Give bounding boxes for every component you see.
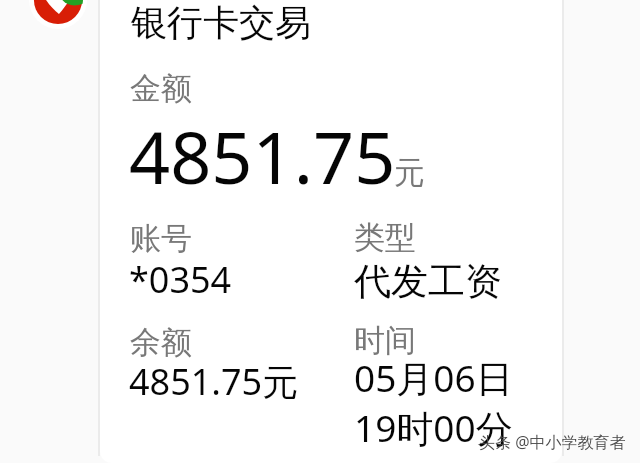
button[interactable]: App icon	[29, 0, 87, 30]
staticText: 余额	[130, 323, 192, 362]
staticText: 05月06日	[354, 352, 513, 403]
staticText: 4851.75	[129, 107, 396, 205]
staticText: 类型	[354, 218, 416, 257]
staticText: 代发工资	[354, 258, 502, 305]
staticText: 头条 @中小学教育者	[479, 431, 626, 453]
staticText: 金额	[130, 69, 192, 108]
button[interactable]	[100, 0, 562, 463]
staticText: 银行卡交易	[131, 0, 311, 45]
staticText: *0354	[129, 255, 232, 304]
staticText: 元	[394, 153, 425, 192]
staticText: 4851.75元	[129, 357, 299, 406]
staticText: 19时00分	[354, 402, 513, 453]
staticText: 时间	[354, 321, 416, 360]
staticText: 账号	[130, 219, 192, 258]
